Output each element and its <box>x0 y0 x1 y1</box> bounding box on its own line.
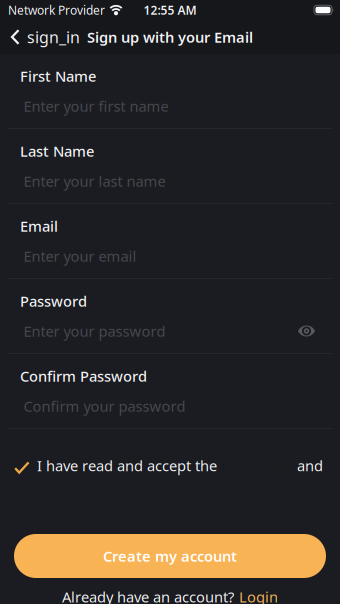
staticText: Confirm your password <box>23 396 185 416</box>
staticText: Login <box>239 587 278 604</box>
staticText: Last Name <box>20 141 94 161</box>
button[interactable]: Login <box>239 587 278 604</box>
staticText: 12:55 AM <box>143 2 196 18</box>
staticText: Enter your last name <box>23 171 165 191</box>
staticText: I have read and accept the <box>37 456 217 475</box>
staticText: Confirm Password <box>20 366 147 386</box>
staticText: Enter your password <box>23 321 165 341</box>
staticText: Create my account <box>103 546 237 566</box>
staticText: sign_in <box>27 26 80 48</box>
staticText: Sign up with your Email <box>87 27 253 47</box>
staticText: Enter your email <box>23 246 136 266</box>
button[interactable]: Back to sign_in <box>0 26 80 48</box>
button[interactable]: Create my account <box>0 534 340 578</box>
staticText: Email <box>20 216 58 236</box>
button[interactable]: Show password <box>298 324 332 338</box>
staticText: First Name <box>20 66 96 86</box>
button[interactable]: Accept terms <box>14 457 30 474</box>
staticText: Network Provider <box>8 2 105 18</box>
staticText: and <box>297 456 323 475</box>
staticText: Enter your first name <box>23 96 168 116</box>
staticText: Already have an account? <box>62 587 234 604</box>
staticText: Password <box>20 291 87 311</box>
